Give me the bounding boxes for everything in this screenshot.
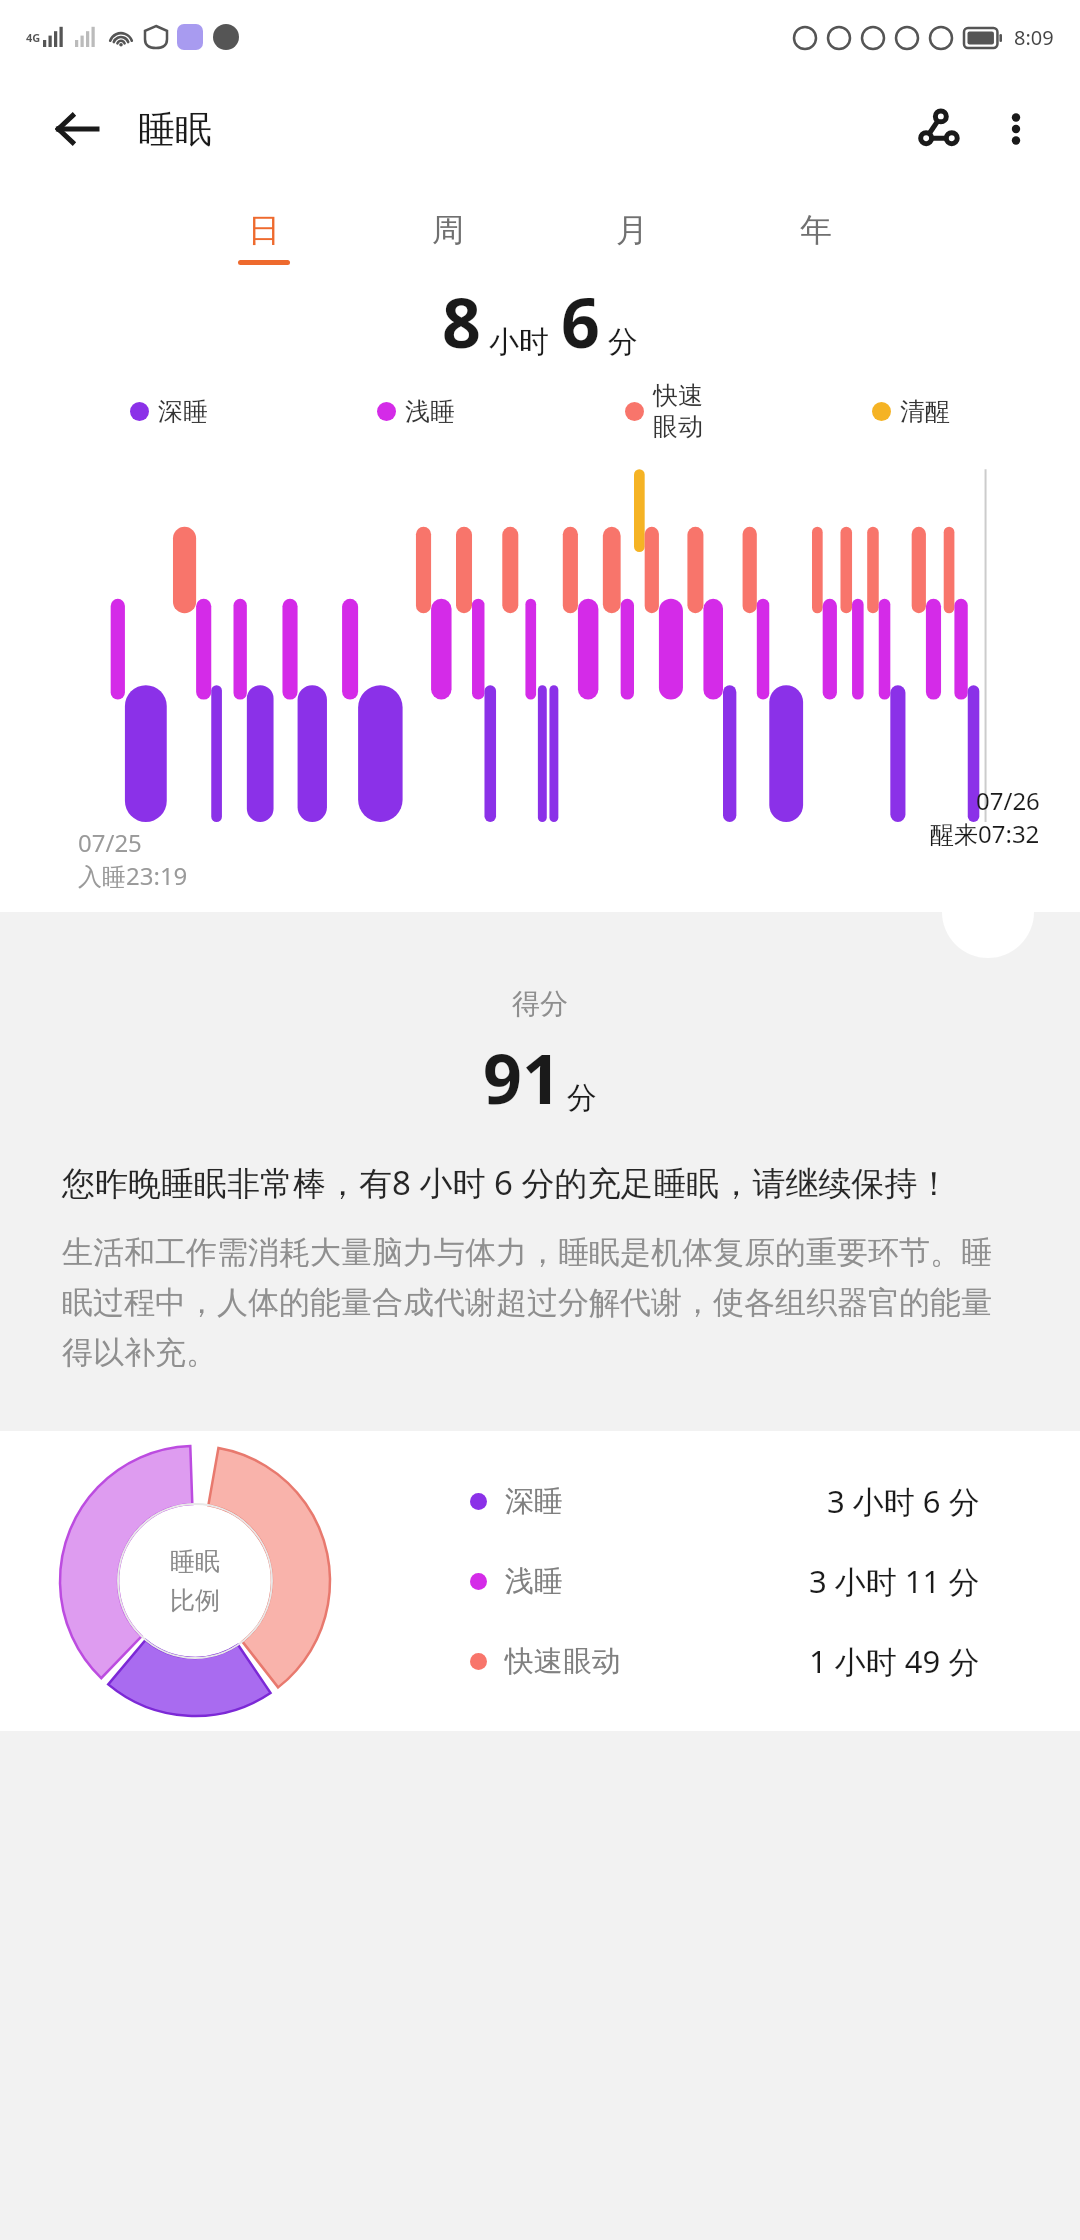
staticText: 您昨晚睡眠非常棒，有8 小时 6 分的充足睡眠，请继续保持！	[62, 1160, 951, 1205]
staticText: 3 小时 6 分	[827, 1480, 980, 1522]
staticText: 生活和工作需消耗大量脑力与体力，睡眠是机体复原的重要环节。睡眠过程中，人体的能量…	[62, 1233, 1018, 1373]
staticText: 快速	[653, 380, 703, 411]
staticText: 分	[608, 323, 638, 361]
button[interactable]: 快速眼动	[470, 1640, 1040, 1682]
staticText: 得分	[0, 986, 1080, 1021]
staticText: 8	[442, 275, 481, 368]
staticText: 醒来07:32	[930, 817, 1040, 850]
staticText: 入睡23:19	[78, 859, 188, 892]
button[interactable]: 年	[782, 210, 850, 265]
button[interactable]: 清醒	[872, 396, 950, 427]
staticText: 深睡	[505, 1483, 563, 1520]
staticText: 3 小时 11 分	[809, 1560, 980, 1602]
button[interactable]: Back	[44, 97, 108, 161]
staticText: 清醒	[900, 396, 950, 427]
staticText: 07/26	[976, 784, 1040, 817]
staticText: 睡眠	[170, 1546, 220, 1577]
staticText: 睡眠	[138, 106, 212, 153]
staticText: 分	[567, 1079, 597, 1117]
button[interactable]: 日	[230, 210, 298, 265]
staticText: 6	[561, 275, 600, 368]
staticText: 眼动	[653, 411, 703, 442]
staticText: 8:09	[1014, 24, 1054, 51]
staticText: 年	[800, 210, 832, 250]
staticText: 1 小时 49 分	[809, 1640, 980, 1682]
staticText: 快速眼动	[505, 1643, 621, 1680]
staticText: 07/25	[78, 826, 142, 859]
button[interactable]: Share	[902, 91, 978, 167]
staticText: 比例	[170, 1585, 220, 1616]
staticText: 深睡	[158, 396, 208, 427]
staticText: 日	[248, 210, 280, 250]
button[interactable]: More options	[978, 91, 1054, 167]
staticText: 小时	[489, 323, 549, 361]
button[interactable]: 深睡	[470, 1480, 1040, 1522]
button[interactable]: 快速	[625, 380, 703, 442]
button[interactable]: 深睡	[130, 396, 208, 427]
staticText: 4G	[26, 30, 41, 45]
staticText: 浅睡	[405, 396, 455, 427]
button[interactable]: 月	[598, 210, 666, 265]
staticText: 91	[483, 1031, 561, 1124]
button[interactable]: 浅睡	[470, 1560, 1040, 1602]
button[interactable]: 周	[414, 210, 482, 265]
button[interactable]: Expand details	[942, 866, 1034, 958]
staticText: 浅睡	[505, 1563, 563, 1600]
button[interactable]: 浅睡	[377, 396, 455, 427]
staticText: 月	[616, 210, 648, 250]
staticText: 周	[432, 210, 464, 250]
